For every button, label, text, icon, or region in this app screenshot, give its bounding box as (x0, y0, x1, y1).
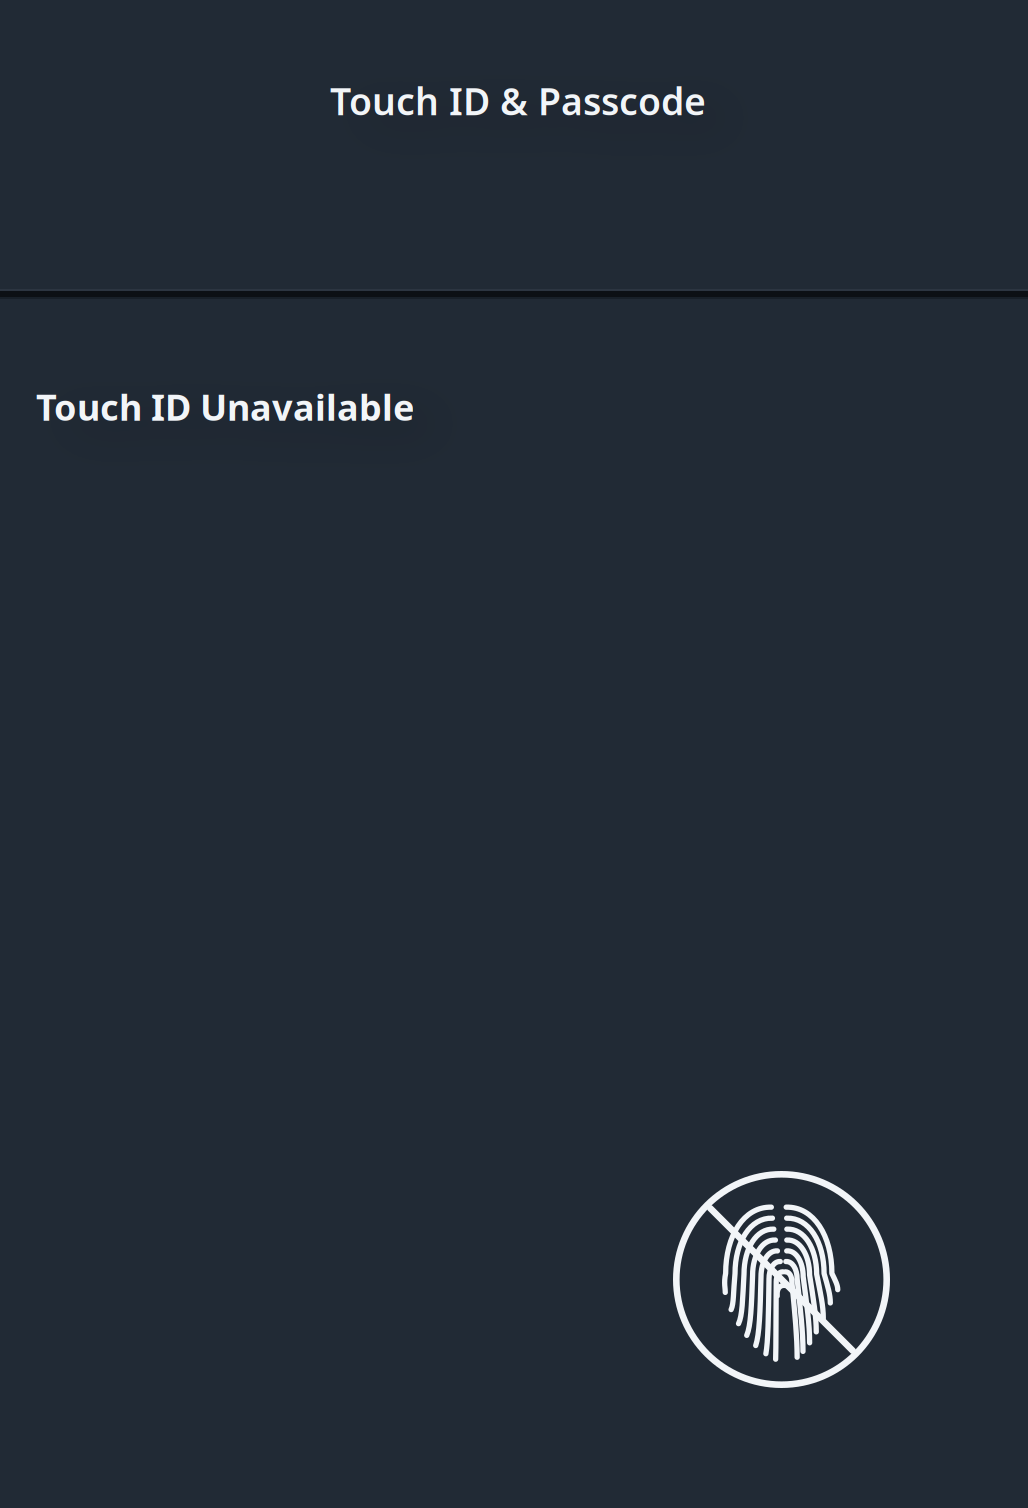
staticText: Touch ID Unavailable (36, 383, 414, 431)
staticText: Touch ID & Passcode (330, 76, 706, 126)
